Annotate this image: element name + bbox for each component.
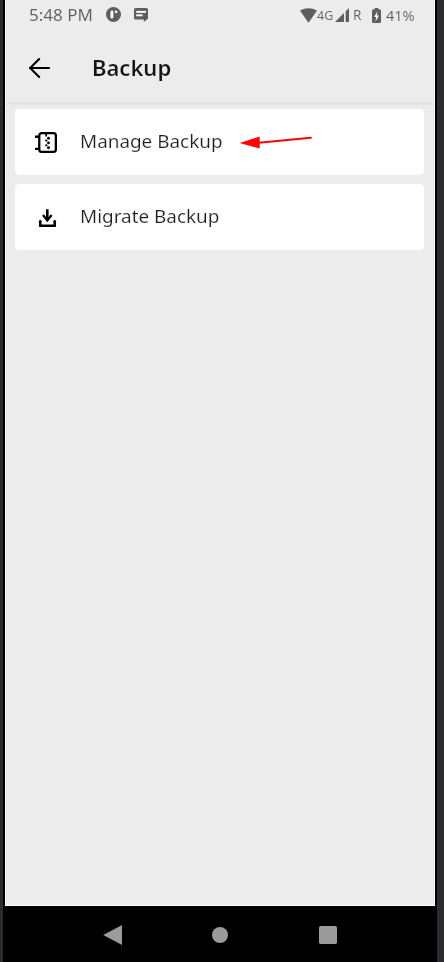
staticText: 41%	[386, 5, 415, 25]
button[interactable]: Recent apps	[316, 923, 340, 947]
staticText: 4G	[317, 7, 334, 24]
staticText: Backup	[92, 52, 172, 82]
button[interactable]: Back	[103, 923, 127, 947]
staticText: 5:48 PM	[29, 3, 93, 26]
staticText: Migrate Backup	[80, 203, 220, 229]
button[interactable]: Back	[29, 54, 57, 82]
button[interactable]: Manage Backup	[15, 109, 424, 175]
button[interactable]: Home	[208, 923, 232, 947]
button[interactable]: Migrate Backup	[15, 184, 424, 250]
staticText: Manage Backup	[80, 128, 223, 154]
staticText: R	[353, 6, 362, 24]
